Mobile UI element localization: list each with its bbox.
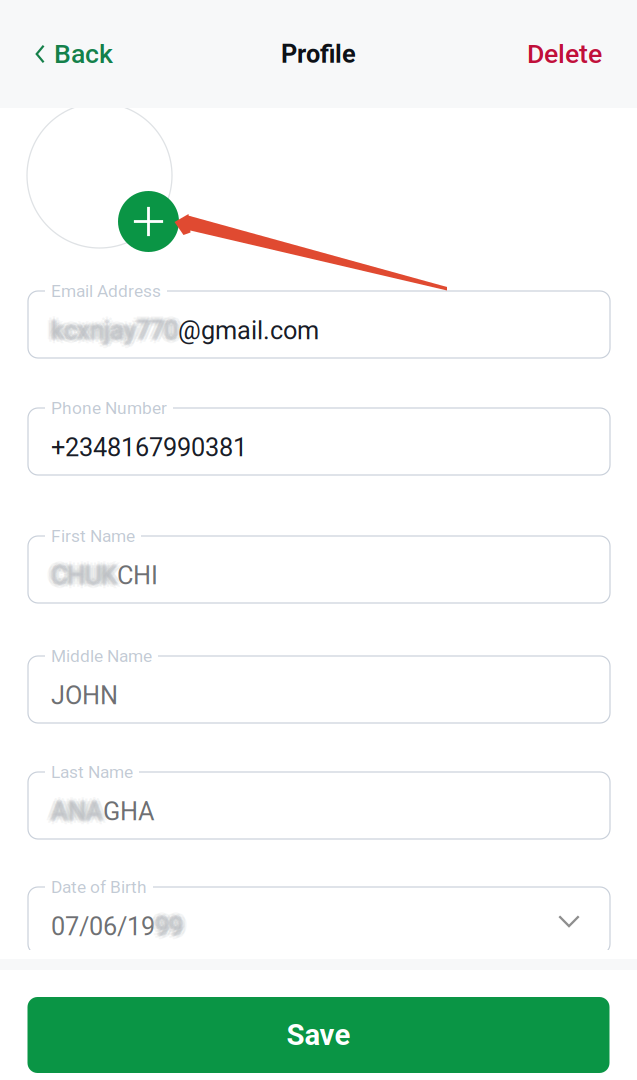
staticText: Email Address: [51, 281, 161, 301]
staticText: CHUK: [50, 560, 116, 589]
staticText: ANA: [54, 799, 106, 829]
staticText: ANA: [51, 793, 103, 822]
staticText: CHUK: [48, 558, 114, 588]
staticText: ANA: [48, 794, 100, 824]
staticText: 07/06/19: [51, 912, 155, 941]
staticText: CHI: [117, 561, 158, 590]
button[interactable]: Add profile photo: [118, 191, 179, 252]
staticText: @gmail.com: [178, 316, 319, 345]
staticText: CHUK: [51, 565, 117, 594]
staticText: CHUK: [52, 562, 118, 591]
staticText: 99: [158, 914, 186, 944]
staticText: 99: [156, 911, 184, 940]
staticText: 99: [152, 914, 180, 944]
staticText: ANA: [56, 797, 108, 826]
staticText: kcxnjay770: [53, 316, 180, 345]
staticText: CHUK: [46, 561, 112, 590]
staticText: ANA: [51, 798, 103, 828]
staticText: Date of Birth: [51, 877, 147, 897]
staticText: kcxnjay770: [56, 316, 183, 345]
staticText: 99: [154, 911, 182, 940]
staticText: CHUK: [49, 561, 115, 590]
staticText: kcxnjay770: [51, 317, 178, 347]
staticText: Save: [286, 1018, 350, 1052]
staticText: 99: [155, 913, 183, 943]
staticText: CHUK: [51, 557, 117, 586]
staticText: kcxnjay770: [48, 318, 175, 348]
staticText: +2348167990381: [51, 433, 247, 462]
staticText: 99: [154, 913, 182, 942]
staticText: kcxnjay770: [51, 314, 178, 344]
staticText: 99: [160, 912, 188, 941]
staticText: Back: [54, 38, 113, 70]
staticText: CHUK: [56, 561, 122, 590]
staticText: CHUK: [51, 559, 117, 589]
staticText: Phone Number: [51, 398, 167, 418]
button[interactable]: Save: [27, 997, 609, 1073]
staticText: ANA: [48, 799, 100, 829]
staticText: kcxnjay770: [49, 316, 176, 345]
staticText: 99: [155, 916, 183, 945]
staticText: kcxnjay770: [50, 317, 177, 346]
staticText: 99: [155, 912, 183, 941]
staticText: 99: [155, 910, 183, 940]
staticText: ANA: [53, 797, 105, 826]
staticText: CHUK: [51, 562, 117, 592]
staticText: ANA: [52, 798, 104, 827]
staticText: CHUK: [51, 561, 117, 590]
staticText: CHUK: [54, 558, 120, 588]
staticText: ANA: [51, 797, 103, 826]
staticText: ANA: [51, 801, 103, 830]
staticText: 99: [155, 908, 183, 937]
staticText: kcxnjay770: [54, 318, 181, 348]
staticText: Last Name: [51, 762, 133, 782]
staticText: ANA: [50, 798, 102, 827]
staticText: 99: [157, 912, 185, 941]
staticText: Delete: [527, 38, 602, 70]
staticText: ANA: [51, 795, 103, 825]
staticText: kcxnjay770: [52, 317, 179, 346]
staticText: Profile: [281, 39, 356, 69]
staticText: 99: [150, 912, 178, 941]
staticText: 99: [158, 909, 186, 939]
staticText: ANA: [46, 797, 98, 826]
staticText: CHUK: [50, 562, 116, 591]
staticText: JOHN: [51, 681, 118, 710]
staticText: kcxnjay770: [48, 313, 175, 343]
staticText: CHUK: [48, 563, 114, 593]
staticText: CHUK: [52, 560, 118, 589]
staticText: kcxnjay770: [54, 313, 181, 343]
staticText: kcxnjay770: [51, 320, 178, 349]
staticText: 99: [153, 912, 181, 941]
button[interactable]: Delete: [505, 20, 637, 88]
staticText: ANA: [49, 797, 101, 826]
staticText: kcxnjay770: [51, 316, 178, 345]
staticText: CHUK: [53, 561, 119, 590]
staticText: kcxnjay770: [46, 316, 173, 345]
staticText: CHUK: [54, 563, 120, 593]
button[interactable]: Back: [0, 20, 135, 88]
staticText: kcxnjay770: [51, 312, 178, 341]
staticText: ANA: [52, 796, 104, 825]
staticText: kcxnjay770: [52, 315, 179, 344]
staticText: 99: [156, 913, 184, 942]
staticText: ANA: [50, 796, 102, 825]
staticText: First Name: [51, 526, 135, 546]
staticText: kcxnjay770: [50, 315, 177, 344]
staticText: ANA: [54, 794, 106, 824]
staticText: 99: [152, 909, 180, 939]
staticText: GHA: [103, 797, 155, 826]
staticText: Middle Name: [51, 646, 152, 666]
